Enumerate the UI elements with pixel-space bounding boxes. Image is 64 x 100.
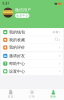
staticText: 帮助中心 bbox=[9, 61, 25, 66]
staticText: ? bbox=[4, 61, 6, 66]
button[interactable]: 我的评价 bbox=[1, 44, 63, 51]
button[interactable]: ? bbox=[1, 60, 63, 67]
button[interactable]: 订单 bbox=[21, 90, 43, 98]
button[interactable]: 我的收藏 bbox=[1, 36, 63, 43]
button[interactable]: 我的 bbox=[43, 90, 64, 98]
staticText: 会员中心 bbox=[16, 14, 28, 17]
staticText: 余额 bbox=[52, 30, 58, 34]
button[interactable]: 首页 bbox=[0, 90, 21, 98]
staticText: 9:41 bbox=[3, 2, 10, 5]
staticText: 首页 bbox=[8, 95, 14, 98]
button[interactable]: 邀请好友 bbox=[1, 52, 63, 60]
staticText: 我的收藏 bbox=[9, 37, 25, 42]
staticText: 设置中心 bbox=[9, 69, 25, 74]
button[interactable]: 我的钱包 bbox=[1, 28, 63, 36]
staticText: 邀请好友 bbox=[9, 53, 25, 58]
staticText: 我的钱包 bbox=[9, 30, 25, 34]
staticText: 我的评价 bbox=[9, 45, 25, 50]
staticText: 我的 bbox=[50, 95, 56, 98]
button[interactable]: 设置中心 bbox=[1, 68, 63, 75]
staticText: 12 bbox=[54, 38, 58, 41]
staticText: 微信用户 bbox=[15, 7, 31, 12]
staticText: 订单 bbox=[29, 95, 35, 98]
